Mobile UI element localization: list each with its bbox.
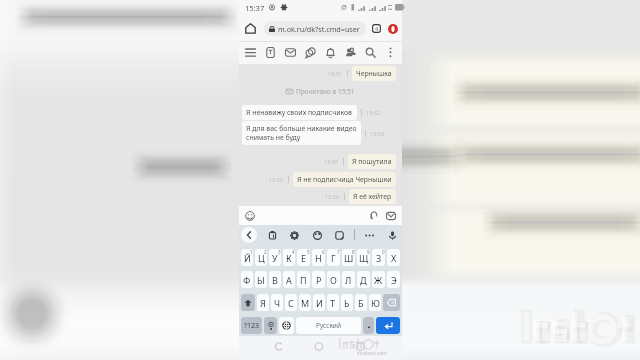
button[interactable]: ?123 bbox=[241, 317, 262, 334]
staticText: Ф bbox=[243, 274, 251, 286]
button[interactable]: П bbox=[297, 271, 310, 288]
staticText: 15:37 bbox=[245, 3, 265, 13]
button[interactable]: Notifications bbox=[322, 44, 339, 61]
button[interactable]: Back bbox=[241, 227, 257, 243]
button[interactable]: Home bbox=[242, 20, 259, 37]
button[interactable]: Tabs bbox=[370, 22, 383, 35]
button[interactable]: К bbox=[283, 249, 295, 266]
button[interactable]: Period bbox=[363, 317, 374, 334]
staticText: А bbox=[286, 274, 292, 286]
staticText: 9 bbox=[367, 249, 370, 255]
staticText: Я не подписчица Чернышки bbox=[297, 175, 392, 184]
staticText: Э bbox=[391, 274, 397, 286]
staticText: Я bbox=[260, 297, 266, 309]
button[interactable]: Э bbox=[387, 271, 400, 288]
staticText: И bbox=[316, 297, 323, 309]
button[interactable]: Л bbox=[342, 271, 355, 288]
button[interactable]: Enter bbox=[376, 317, 400, 334]
staticText: m.ok.ru/dk?st.cmd=user bbox=[278, 24, 360, 34]
button[interactable]: Е bbox=[297, 249, 310, 266]
button[interactable]: Й bbox=[241, 249, 253, 266]
button[interactable]: Г bbox=[327, 249, 340, 266]
button[interactable]: Backspace bbox=[383, 294, 400, 311]
button[interactable]: У bbox=[269, 249, 281, 266]
button[interactable]: Settings bbox=[286, 227, 302, 243]
button[interactable]: Ж bbox=[372, 271, 385, 288]
button[interactable]: More keyboard options bbox=[361, 227, 377, 243]
button[interactable]: В bbox=[269, 271, 281, 288]
button[interactable]: Stickers bbox=[331, 227, 347, 243]
button[interactable]: Friends bbox=[342, 44, 359, 61]
staticText: Я для вас больше никакие видео снимать н… bbox=[246, 124, 357, 142]
button[interactable]: Р bbox=[312, 271, 325, 288]
button[interactable]: И bbox=[313, 294, 325, 311]
staticText: Г bbox=[331, 252, 336, 264]
staticText: 1 bbox=[250, 249, 253, 255]
button[interactable]: Н bbox=[312, 249, 325, 266]
button[interactable]: Ф bbox=[241, 271, 253, 288]
staticText: П bbox=[300, 274, 307, 286]
button[interactable]: Search bbox=[362, 44, 379, 61]
button[interactable]: О bbox=[327, 271, 340, 288]
button[interactable]: Х bbox=[387, 249, 400, 266]
staticText: 15:53 bbox=[370, 130, 385, 137]
staticText: Чернышка bbox=[356, 69, 392, 78]
button[interactable]: Я для вас больше никакие видео снимать н… bbox=[242, 121, 361, 145]
staticText: Прочитано в 15:51 bbox=[296, 87, 355, 96]
button[interactable]: Ч bbox=[271, 294, 283, 311]
staticText: 0 bbox=[382, 249, 385, 255]
button[interactable]: Feed bbox=[262, 44, 279, 61]
button[interactable]: Emoji bbox=[242, 208, 258, 224]
button[interactable]: Я не подписчица Чернышки bbox=[293, 172, 396, 187]
staticText: Ч bbox=[274, 297, 281, 309]
button[interactable]: m.ok.ru/dk?st.cmd=user bbox=[264, 21, 366, 36]
button[interactable]: Clipboard bbox=[264, 227, 280, 243]
staticText: Щ bbox=[359, 252, 369, 264]
staticText: ?123 bbox=[244, 321, 260, 331]
button[interactable]: Ь bbox=[341, 294, 353, 311]
button[interactable]: Themes bbox=[309, 227, 325, 243]
staticText: 15:55 bbox=[269, 176, 284, 183]
staticText: 15:55 bbox=[324, 158, 339, 165]
button[interactable]: Я bbox=[257, 294, 269, 311]
button[interactable]: Send message bbox=[383, 208, 399, 224]
button[interactable]: Я её хейтер bbox=[349, 189, 396, 204]
button[interactable]: Attach file bbox=[366, 208, 382, 224]
button[interactable]: Ш bbox=[342, 249, 355, 266]
button[interactable]: Menu bbox=[242, 44, 259, 61]
button[interactable]: Messages bbox=[302, 44, 319, 61]
staticText: Б bbox=[358, 297, 364, 309]
button[interactable]: More bbox=[382, 44, 399, 61]
staticText: shotcut.com bbox=[357, 349, 388, 356]
button[interactable]: С bbox=[285, 294, 297, 311]
staticText: Ю bbox=[371, 297, 380, 309]
button[interactable]: Д bbox=[357, 271, 370, 288]
button[interactable]: Т bbox=[327, 294, 339, 311]
button[interactable]: Ы bbox=[255, 271, 267, 288]
button[interactable]: Mail bbox=[282, 44, 299, 61]
button[interactable]: Чернышка bbox=[352, 66, 396, 81]
staticText: Н bbox=[315, 252, 322, 264]
button[interactable]: М bbox=[299, 294, 311, 311]
button[interactable]: Я пошутила bbox=[348, 154, 396, 169]
staticText: 4 bbox=[292, 249, 295, 255]
staticText: Ь bbox=[344, 297, 350, 309]
button[interactable]: Ц bbox=[255, 249, 267, 266]
button[interactable]: А bbox=[283, 271, 295, 288]
button[interactable]: Я ненавижу своих подписчиков bbox=[242, 105, 357, 120]
staticText: Л bbox=[345, 274, 352, 286]
button[interactable]: Щ bbox=[357, 249, 370, 266]
staticText: 15:51 bbox=[328, 70, 343, 77]
button[interactable]: Ю bbox=[369, 294, 381, 311]
button[interactable]: З bbox=[372, 249, 385, 266]
button[interactable]: Русский bbox=[296, 317, 361, 334]
button[interactable]: Voice input bbox=[384, 227, 400, 243]
staticText: Й bbox=[244, 252, 251, 264]
button[interactable]: Change language bbox=[279, 317, 294, 334]
staticText: Т bbox=[330, 297, 336, 309]
button[interactable]: Comma and emoji bbox=[264, 317, 277, 334]
button[interactable]: Opera menu bbox=[386, 22, 399, 35]
staticText: Я пошутила bbox=[352, 157, 392, 166]
button[interactable]: Б bbox=[355, 294, 367, 311]
button[interactable]: Shift bbox=[241, 294, 255, 311]
